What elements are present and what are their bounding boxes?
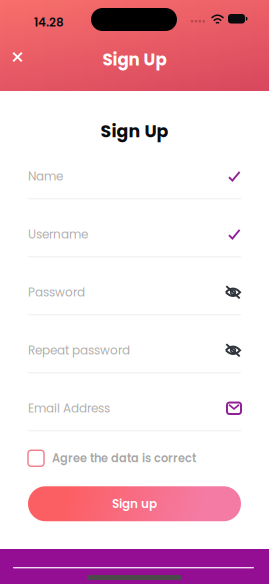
staticText: Agree the data is correct: [52, 450, 196, 466]
button[interactable]: Close: [2, 42, 33, 72]
button[interactable]: Email Address: [28, 386, 241, 444]
button[interactable]: Password: [28, 270, 241, 328]
staticText: Sign up: [112, 495, 157, 512]
staticText: Repeat password: [28, 342, 130, 359]
button[interactable]: Name: [28, 154, 241, 212]
button[interactable]: Repeat password: [28, 328, 241, 386]
staticText: Sign Up: [102, 48, 166, 71]
staticText: Password: [28, 284, 85, 301]
staticText: Name: [28, 168, 63, 185]
staticText: Username: [28, 226, 88, 243]
button[interactable]: Agree the data is correct: [28, 444, 241, 472]
staticText: 14.28: [34, 14, 64, 31]
staticText: Sign Up: [100, 119, 168, 143]
button[interactable]: Sign up: [28, 486, 241, 521]
button[interactable]: Username: [28, 212, 241, 270]
staticText: Email Address: [28, 400, 110, 417]
